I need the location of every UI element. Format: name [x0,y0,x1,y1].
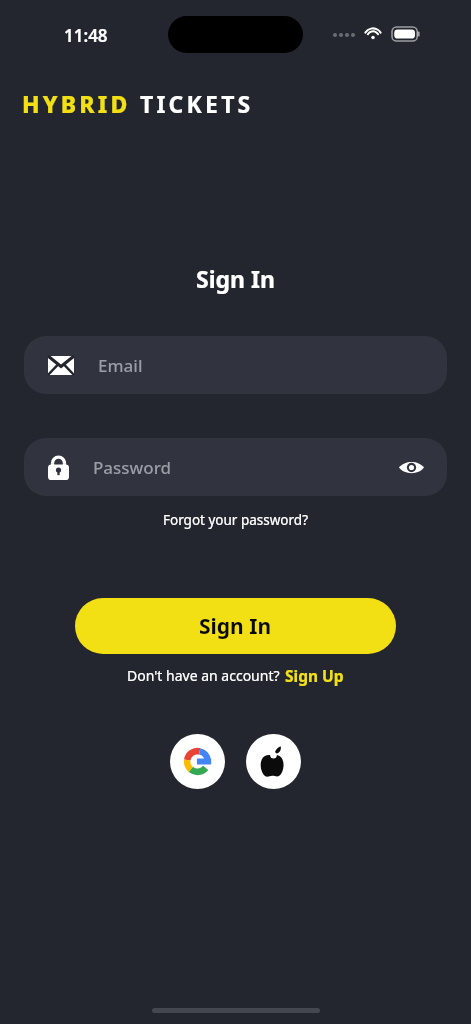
staticText: TICKETS [140,88,254,119]
button[interactable]: Show password [395,451,427,483]
staticText: Forgot your password? [163,511,309,529]
button[interactable]: Sign in with Apple [246,734,301,789]
button[interactable]: Email [24,336,447,394]
staticText: Email [98,354,427,377]
button[interactable]: Sign in with Google [170,734,225,789]
button[interactable]: Forgot your password? [157,509,315,531]
staticText: Sign In [196,263,275,294]
button[interactable]: Password [24,438,447,496]
staticText: 11:48 [64,24,108,47]
staticText: Password [93,456,395,479]
button[interactable]: Sign In [75,598,396,654]
staticText: Sign In [199,612,272,641]
staticText: Sign Up [285,665,344,686]
button[interactable]: Sign Up [285,665,344,686]
staticText: HYBRID [22,88,131,119]
staticText: Don't have an account? [127,666,280,685]
